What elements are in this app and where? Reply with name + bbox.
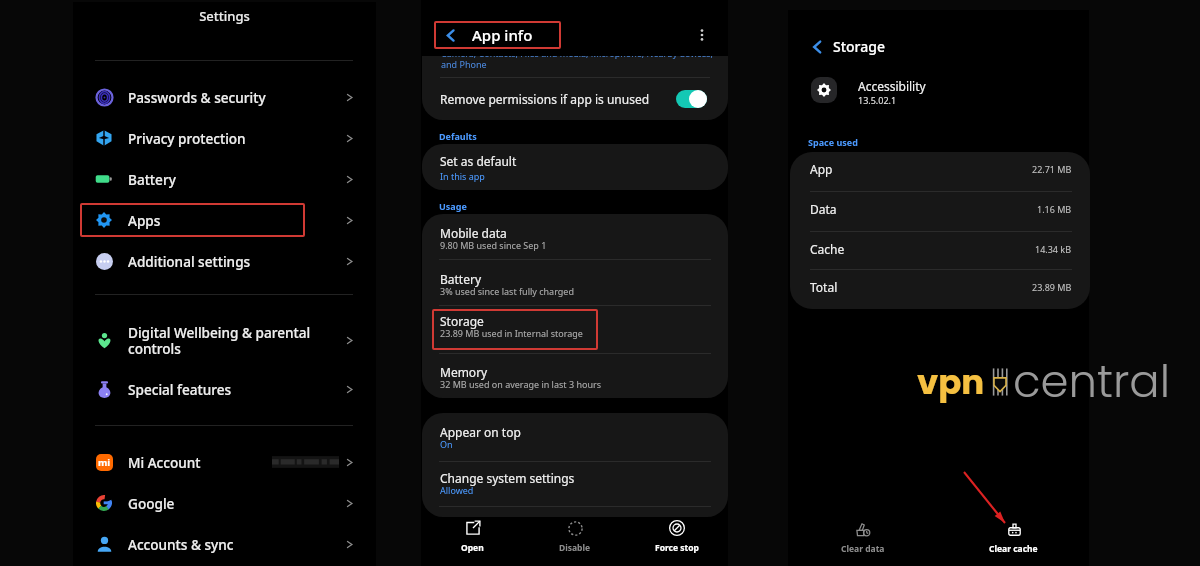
staticText: Allowed [440, 484, 474, 496]
staticText: Accessibility [858, 78, 926, 94]
staticText: 23.89 MB used in Internal storage [440, 327, 583, 339]
staticText: Remove permissions if app is unused [440, 91, 650, 107]
staticText: Additional settings [128, 252, 251, 271]
staticText: Clear data [841, 543, 885, 555]
button[interactable]: Back [808, 38, 826, 56]
button[interactable]: Special features [73, 369, 376, 409]
button[interactable]: Google [73, 483, 376, 523]
staticText: Open [461, 542, 484, 554]
button[interactable]: Apps [73, 200, 376, 240]
staticText: Storage [833, 37, 885, 56]
button[interactable] [422, 358, 728, 398]
staticText: Camera, Contacts, Files and media, Micro… [441, 56, 713, 71]
staticText: Special features [128, 380, 232, 399]
staticText: Appear on top [440, 424, 521, 440]
staticText: Usage [439, 200, 467, 212]
staticText: Apps [128, 211, 161, 230]
button[interactable] [790, 272, 1090, 309]
staticText: Disable [559, 542, 591, 554]
staticText: In this app [440, 170, 485, 182]
button[interactable]: Clear cache [938, 515, 1089, 560]
staticText: Google [128, 494, 175, 513]
staticText: Accounts & sync [128, 535, 234, 554]
button[interactable]: Passwords & security [73, 77, 376, 117]
staticText: Battery [440, 271, 482, 287]
button[interactable]: Remove permissions if app is unused [422, 78, 728, 120]
staticText: Change system settings [440, 470, 575, 486]
staticText: central [1013, 350, 1171, 413]
staticText: On [440, 438, 453, 450]
button[interactable]: mi [73, 442, 376, 482]
staticText: Digital Wellbeing & parental controls [128, 323, 311, 358]
staticText: Cache [810, 241, 845, 257]
staticText: 14.34 kB [1035, 243, 1072, 255]
button[interactable]: Battery [73, 159, 376, 199]
button[interactable] [422, 265, 728, 307]
staticText: vpn [917, 358, 985, 406]
staticText: 13.5.02.1 [858, 94, 897, 106]
button[interactable]: More options [694, 27, 710, 43]
button[interactable]: Privacy protection [73, 118, 376, 158]
button[interactable] [422, 418, 728, 460]
button[interactable] [422, 307, 728, 349]
staticText: Privacy protection [128, 129, 246, 148]
staticText: Total [810, 279, 838, 295]
staticText: Battery [128, 170, 176, 189]
button[interactable]: Clear data [788, 515, 938, 560]
staticText: Data [810, 201, 837, 217]
staticText: Defaults [439, 130, 477, 142]
staticText: App info [472, 25, 533, 45]
staticText: Storage [440, 313, 484, 329]
staticText: mi [98, 456, 111, 469]
staticText: 22.71 MB [1032, 163, 1072, 175]
staticText: Passwords & security [128, 88, 266, 107]
staticText: 9.80 MB used since Sep 1 [440, 239, 547, 251]
button[interactable] [790, 234, 1090, 273]
staticText: Force stop [655, 542, 699, 554]
staticText: Mobile data [440, 225, 507, 241]
button[interactable] [422, 464, 728, 506]
staticText: Clear cache [989, 543, 1038, 555]
staticText: Space used [808, 136, 858, 148]
staticText: Mi Account [128, 453, 201, 472]
staticText: Set as default [440, 153, 517, 169]
button[interactable]: Disable [524, 514, 626, 559]
staticText: 1.16 MB [1037, 203, 1072, 215]
staticText: Memory [440, 364, 488, 380]
staticText: App [810, 161, 833, 177]
staticText: 23.89 MB [1032, 281, 1072, 293]
button[interactable]: Force stop [626, 514, 728, 559]
staticText: Settings [73, 7, 376, 25]
button[interactable]: Open [421, 514, 524, 559]
button[interactable]: Accounts & sync [73, 524, 376, 564]
button[interactable]: Additional settings [73, 241, 376, 281]
staticText: 32 MB used on average in last 3 hours [440, 378, 601, 390]
button[interactable] [790, 154, 1090, 193]
button[interactable] [422, 219, 728, 261]
staticText: 3% used since last fully charged [440, 285, 574, 297]
button[interactable]: Back [441, 26, 459, 44]
button[interactable] [790, 194, 1090, 233]
button[interactable]: Digital Wellbeing & parental controls [73, 320, 376, 360]
